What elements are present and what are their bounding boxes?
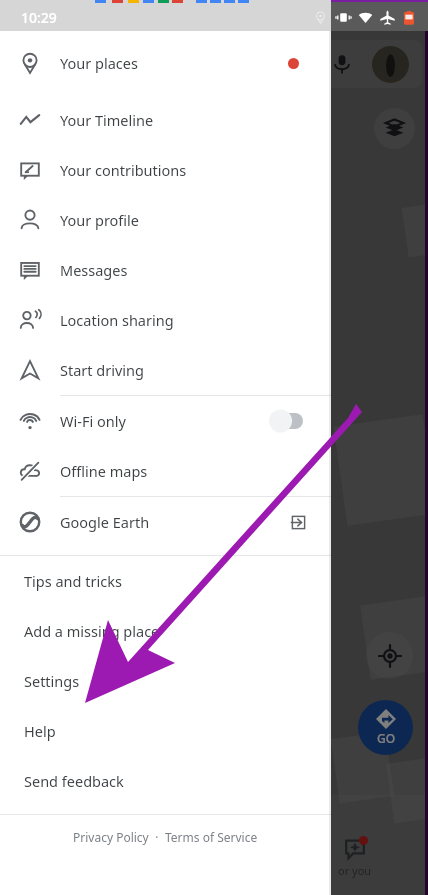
staticText: Offline maps xyxy=(60,461,148,481)
button[interactable]: Privacy Policy xyxy=(73,829,149,845)
staticText: Start driving xyxy=(60,360,144,380)
button[interactable]: Messages xyxy=(0,245,331,295)
button[interactable]: Offline maps xyxy=(0,446,331,496)
button[interactable]: Your profile xyxy=(0,195,331,245)
button[interactable]: Your Timeline xyxy=(0,95,331,145)
staticText: Location sharing xyxy=(60,310,174,330)
button[interactable]: Tips and tricks xyxy=(0,556,331,606)
button[interactable]: My location xyxy=(366,632,413,679)
staticText: Add a missing place xyxy=(24,621,160,641)
staticText: Settings xyxy=(24,671,80,691)
staticText: Wi-Fi only xyxy=(60,411,126,431)
staticText: Your Timeline xyxy=(60,110,154,130)
staticText: Send feedback xyxy=(24,771,124,791)
staticText: Tips and tricks xyxy=(24,571,122,591)
button[interactable]: or you xyxy=(325,838,385,888)
button[interactable]: Map layers xyxy=(374,108,415,149)
staticText: Help xyxy=(24,721,56,741)
staticText: GO xyxy=(377,730,396,746)
staticText: or you xyxy=(338,863,372,878)
staticText: Your profile xyxy=(60,210,140,230)
staticText: Your contributions xyxy=(60,160,187,180)
button[interactable]: Your contributions xyxy=(0,145,331,195)
button[interactable]: Terms of Service xyxy=(165,829,258,845)
button[interactable]: Your places xyxy=(0,31,331,95)
staticText: Google Earth xyxy=(60,512,150,532)
button[interactable]: Wi-Fi only xyxy=(0,396,331,446)
button[interactable]: Start driving xyxy=(0,345,331,395)
button[interactable]: GO xyxy=(358,700,413,755)
button[interactable]: Location sharing xyxy=(0,295,331,345)
staticText: Messages xyxy=(60,260,128,280)
button[interactable]: Settings xyxy=(0,656,331,706)
button[interactable]: Account xyxy=(372,46,409,83)
button[interactable]: Send feedback xyxy=(0,756,331,806)
button[interactable]: Google Earth xyxy=(0,497,331,547)
staticText: · xyxy=(149,829,165,845)
button[interactable]: Help xyxy=(0,706,331,756)
button[interactable]: Voice search xyxy=(328,50,356,78)
button[interactable]: Add a missing place xyxy=(0,606,331,656)
staticText: 10:29 xyxy=(21,8,57,27)
staticText: Your places xyxy=(60,53,138,73)
